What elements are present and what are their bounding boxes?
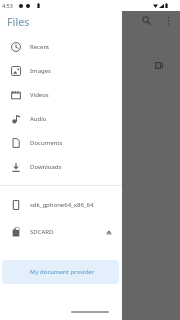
button[interactable]: Images bbox=[2, 59, 119, 83]
button[interactable]: Videos bbox=[2, 83, 119, 107]
staticText: SDCARD bbox=[30, 228, 54, 236]
button[interactable]: sdk_gphone64_x86_64 bbox=[2, 193, 119, 217]
staticText: 4:53 bbox=[2, 2, 13, 9]
staticText: Downloads bbox=[30, 163, 62, 171]
staticText: Files bbox=[7, 15, 30, 29]
staticText: Videos bbox=[30, 91, 49, 99]
staticText: Documents bbox=[30, 139, 63, 147]
staticText: sdk_gphone64_x86_64 bbox=[30, 201, 94, 209]
button[interactable]: SDCARD bbox=[2, 220, 119, 244]
button[interactable]: Documents bbox=[2, 131, 119, 155]
staticText: Audio bbox=[30, 115, 47, 123]
staticText: Images bbox=[30, 67, 51, 75]
staticText: Recent bbox=[30, 43, 50, 51]
button[interactable]: Audio bbox=[2, 107, 119, 131]
button[interactable]: More options bbox=[166, 17, 171, 25]
button[interactable]: Search bbox=[142, 16, 151, 25]
button[interactable]: Recent bbox=[2, 35, 119, 59]
button[interactable]: My document provider bbox=[2, 260, 119, 284]
button[interactable]: Downloads bbox=[2, 155, 119, 179]
staticText: My document provider bbox=[30, 268, 95, 276]
